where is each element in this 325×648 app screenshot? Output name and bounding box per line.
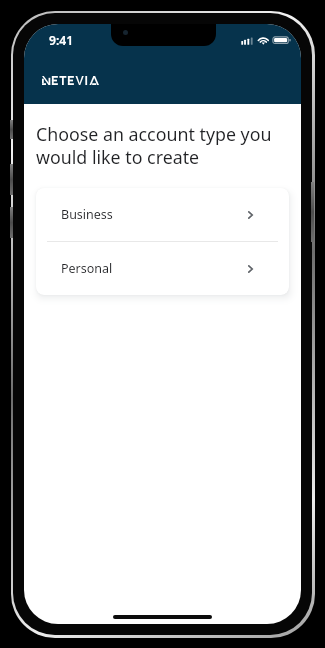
staticText: Personal xyxy=(61,260,113,277)
staticText: Business xyxy=(61,206,113,223)
button[interactable]: Business xyxy=(36,188,289,241)
staticText: Choose an account type you would like to… xyxy=(36,122,284,170)
button[interactable]: Personal xyxy=(36,242,289,295)
staticText: 9:41 xyxy=(49,32,74,49)
